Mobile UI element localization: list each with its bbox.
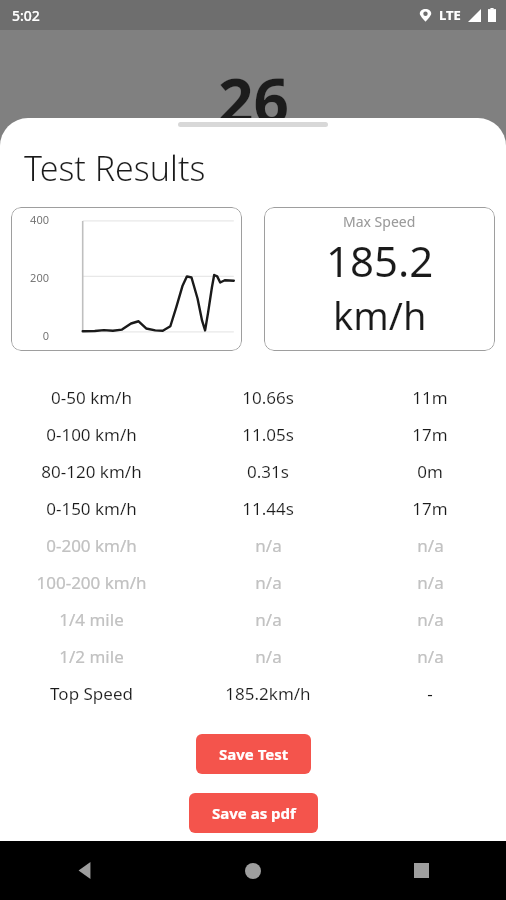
staticText: 200 — [15, 270, 49, 285]
button[interactable]: 1/4 mile — [0, 601, 506, 638]
staticText: 10.66s — [242, 386, 294, 409]
staticText: 0-150 km/h — [46, 497, 137, 520]
staticText: n/a — [417, 645, 444, 668]
staticText: Top Speed — [50, 682, 133, 705]
staticText: n/a — [417, 534, 444, 557]
staticText: 185.2 — [326, 232, 434, 289]
staticText: 26 — [218, 58, 289, 140]
staticText: Max Speed — [343, 212, 416, 231]
staticText: n/a — [255, 645, 282, 668]
staticText: km/h — [333, 289, 427, 341]
staticText: Test Results — [24, 145, 206, 191]
staticText: 0.31s — [247, 460, 289, 483]
button[interactable]: 80-120 km/h — [0, 453, 506, 490]
staticText: 17m — [412, 423, 448, 446]
staticText: 17m — [412, 497, 448, 520]
staticText: Save as pdf — [212, 803, 296, 823]
staticText: 0m — [417, 460, 443, 483]
staticText: 100-200 km/h — [36, 571, 147, 594]
staticText: 11m — [412, 386, 448, 409]
staticText: 0-100 km/h — [46, 423, 137, 446]
staticText: 0-50 km/h — [51, 386, 132, 409]
staticText: - — [427, 682, 433, 705]
staticText: n/a — [417, 608, 444, 631]
button[interactable]: Save Test — [196, 734, 311, 774]
staticText: 1/4 mile — [59, 608, 124, 631]
staticText: 80-120 km/h — [41, 460, 142, 483]
staticText: n/a — [417, 571, 444, 594]
staticText: 0-200 km/h — [46, 534, 137, 557]
button[interactable]: Save as pdf — [189, 793, 318, 833]
staticText: 1/2 mile — [59, 645, 124, 668]
button[interactable]: Back — [0, 841, 168, 900]
button[interactable]: Home — [168, 841, 337, 900]
staticText: n/a — [255, 534, 282, 557]
button[interactable]: 0-100 km/h — [0, 416, 506, 453]
staticText: 185.2km/h — [225, 682, 311, 705]
staticText: Save Test — [219, 744, 289, 764]
button[interactable]: 0-200 km/h — [0, 527, 506, 564]
staticText: n/a — [255, 608, 282, 631]
button[interactable]: Top Speed — [0, 675, 506, 712]
button[interactable]: 0-150 km/h — [0, 490, 506, 527]
staticText: n/a — [255, 571, 282, 594]
staticText: 11.05s — [242, 423, 294, 446]
staticText: 0 — [15, 328, 49, 343]
staticText: 5:02 — [12, 6, 40, 25]
button[interactable]: Recent apps — [337, 841, 506, 900]
staticText: 400 — [15, 212, 49, 227]
button[interactable]: 1/2 mile — [0, 638, 506, 675]
staticText: 11.44s — [242, 497, 294, 520]
button[interactable]: 100-200 km/h — [0, 564, 506, 601]
staticText: LTE — [439, 6, 461, 24]
button[interactable]: 0-50 km/h — [0, 379, 506, 416]
